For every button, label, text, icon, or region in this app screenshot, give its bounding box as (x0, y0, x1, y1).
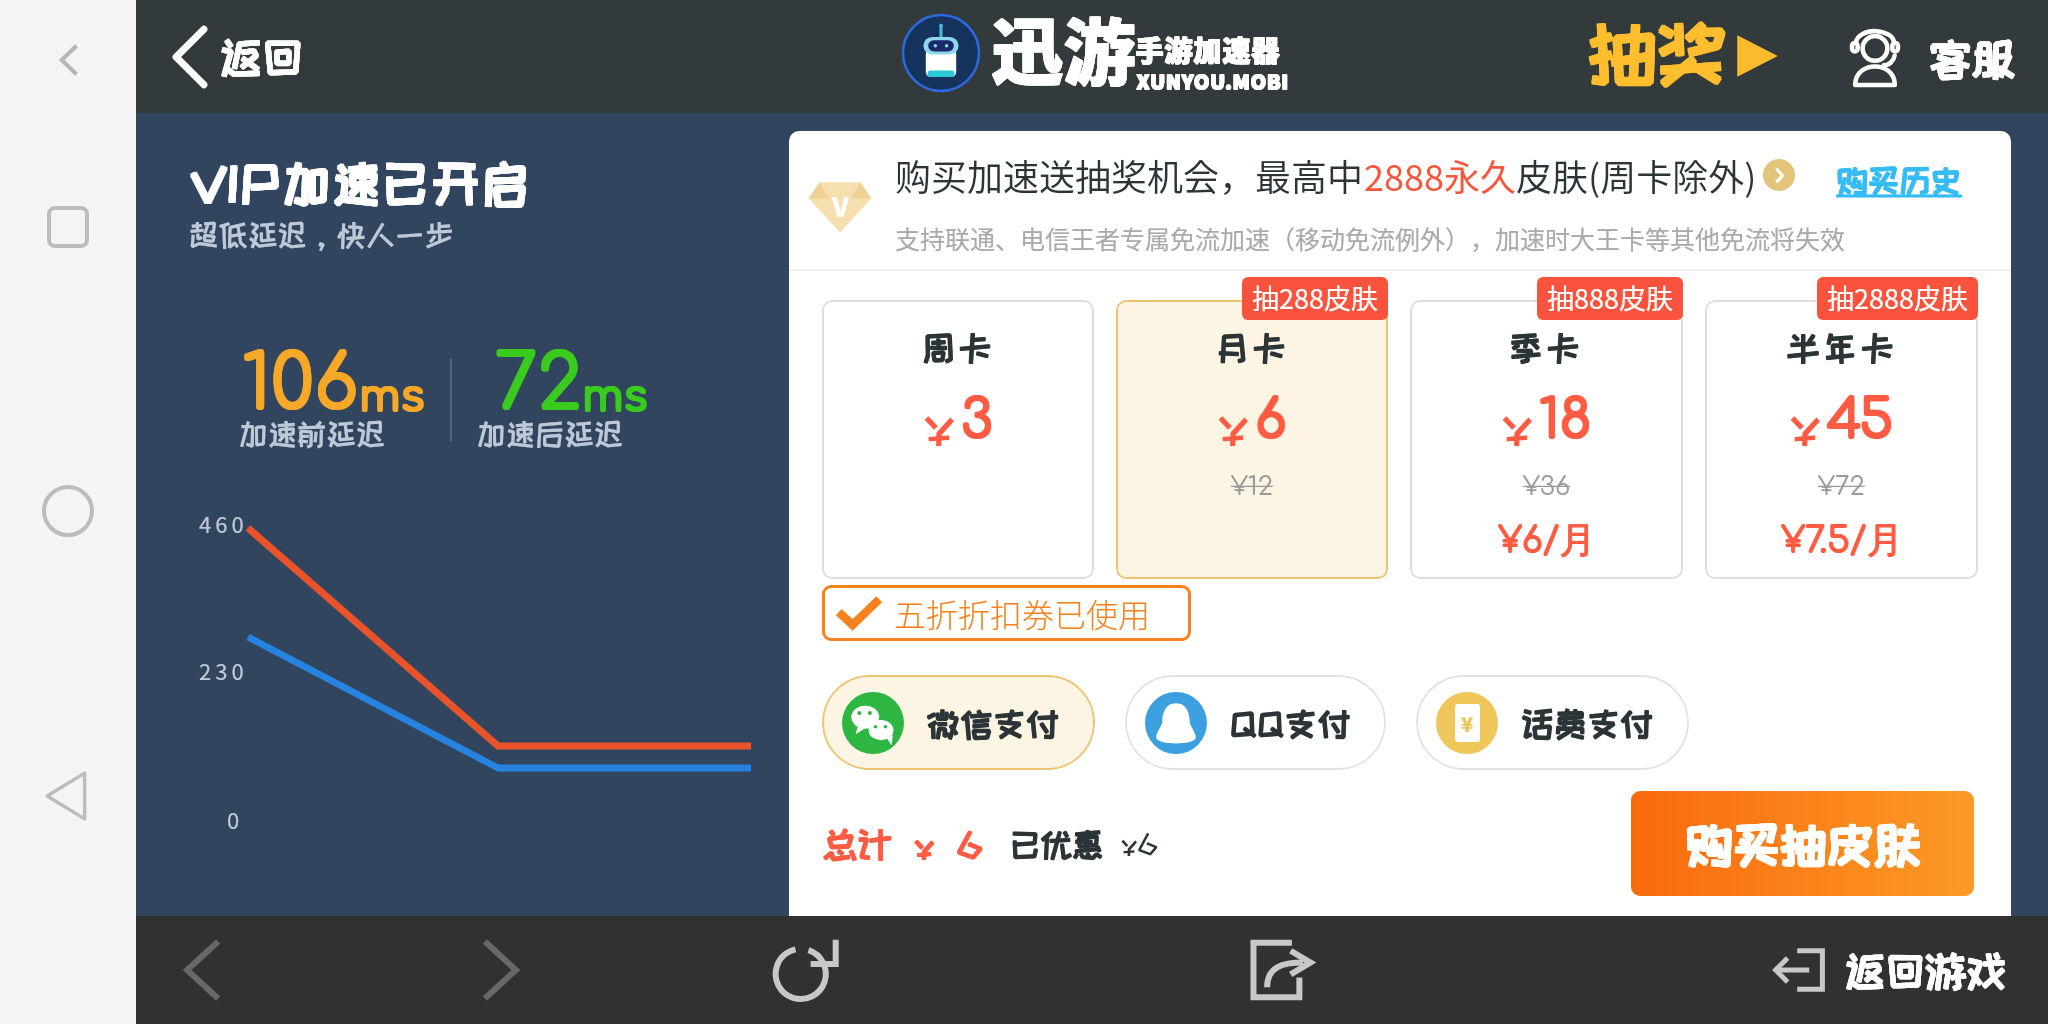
staticText: QQ支付 (1229, 706, 1350, 742)
staticText: ¥72 (1818, 472, 1865, 501)
staticText: 微信支付 (927, 705, 1060, 741)
button[interactable]: 购买历史 (1832, 159, 1966, 201)
staticText: 0 (227, 803, 240, 835)
button[interactable]: Refresh (756, 920, 856, 1020)
staticText: 迅游 (992, 0, 1137, 98)
staticText: 迅游 (991, 0, 1136, 98)
staticText: ms (360, 373, 426, 422)
staticText: 45 (1828, 389, 1895, 449)
staticText: 微信支付 (926, 705, 1059, 741)
button[interactable]: 半年卡 (1705, 300, 1978, 579)
staticText: 手游加速器 (1136, 30, 1282, 71)
button[interactable]: More details (1763, 159, 1795, 191)
button[interactable]: ¥ (1416, 675, 1689, 770)
button[interactable]: 五折折扣券已使用 (822, 585, 1191, 641)
staticText: 客服 (1929, 36, 2016, 83)
staticText: 45 (1826, 389, 1893, 449)
button[interactable]: 周卡 (822, 300, 1094, 579)
staticText: 6 (956, 826, 983, 864)
staticText: 迅游 (991, 0, 1136, 99)
staticText: 6 (956, 825, 983, 863)
staticText: 返回 (220, 35, 305, 81)
staticText: 返回游戏 (1845, 948, 2007, 992)
staticText: 购买历史 (1837, 164, 1963, 198)
staticText: 季卡 (1509, 329, 1584, 365)
staticText: 周卡 (922, 329, 997, 365)
button[interactable]: Share (1232, 920, 1332, 1020)
staticText: 周卡 (921, 330, 996, 366)
staticText: 手游加速器 (1135, 30, 1281, 71)
staticText: 抽2888皮肤 (1827, 278, 1968, 317)
staticText: 106 (241, 343, 358, 428)
staticText: ¥6/月 (1498, 517, 1596, 562)
staticText: 72 (493, 343, 581, 428)
staticText: ¥ (1461, 709, 1474, 738)
staticText: 返回游戏 (1845, 949, 2007, 993)
staticText: 6 (957, 826, 984, 864)
button[interactable]: 返回 (147, 14, 318, 100)
staticText: 抽888皮肤 (1547, 278, 1673, 317)
staticText: 抽奖 (1586, 14, 1726, 90)
staticText: 72 (493, 341, 581, 426)
staticText: 18 (1538, 389, 1591, 449)
staticText: 总计 (823, 825, 893, 863)
button[interactable]: Back (38, 30, 98, 90)
button[interactable]: 季卡 (1410, 300, 1683, 579)
staticText: 月卡 (1216, 329, 1291, 365)
staticText: 总计 (823, 826, 893, 864)
staticText: 18 (1540, 391, 1593, 451)
staticText: ms (581, 373, 647, 422)
button[interactable]: Back (152, 920, 252, 1020)
button[interactable]: 返回游戏 (1766, 934, 2012, 1006)
staticText: ¥ (914, 826, 934, 862)
staticText: ms (358, 373, 424, 422)
button[interactable]: Home (38, 481, 98, 541)
staticText: 3 (962, 389, 994, 449)
staticText: 6 (1256, 391, 1288, 451)
staticText: 季卡 (1510, 330, 1585, 366)
staticText: ms (583, 371, 649, 420)
staticText: QQ支付 (1230, 706, 1351, 742)
staticText: 返回 (219, 35, 304, 81)
staticText: 18 (1538, 391, 1591, 451)
staticText: 106 (243, 341, 360, 426)
staticText: 购买抽皮肤 (1687, 820, 1922, 871)
staticText: ms (581, 371, 647, 420)
staticText: 购买历史 (1837, 163, 1963, 197)
staticText: XUNYOU.MOBI (1137, 67, 1290, 96)
button[interactable]: 微信支付 (822, 675, 1095, 770)
staticText: 半年卡 (1787, 330, 1899, 366)
staticText: 半年卡 (1786, 330, 1898, 366)
button[interactable]: 客服 (1838, 22, 2021, 96)
staticText: 客服 (1928, 35, 2015, 82)
staticText: 周卡 (922, 330, 997, 366)
staticText: 45 (1828, 391, 1895, 451)
staticText: ms (360, 371, 426, 420)
staticText: ¥7.5/月 (1781, 518, 1903, 563)
button[interactable]: Navigate back (38, 766, 98, 826)
button[interactable]: Recents (38, 197, 98, 257)
staticText: 月卡 (1216, 330, 1291, 366)
staticText: 106 (243, 343, 360, 428)
staticText: 超低延迟，快人一步 (189, 219, 454, 251)
button[interactable]: 月卡 (1116, 300, 1388, 579)
staticText: VIP加速已开启 (192, 158, 533, 210)
staticText: 6 (1254, 389, 1286, 449)
staticText: 2888永久 (1364, 149, 1516, 201)
staticText: V (832, 187, 849, 225)
button[interactable]: Forward (451, 920, 551, 1020)
staticText: 106 (241, 341, 358, 426)
button[interactable]: QQ支付 (1125, 675, 1386, 770)
staticText: 微信支付 (926, 706, 1059, 742)
staticText: 话费支付 (1520, 706, 1653, 742)
staticText: 抽奖 (1588, 16, 1728, 92)
button[interactable]: 购买抽皮肤 (1631, 791, 1974, 896)
staticText: 3 (962, 391, 994, 451)
staticText: 返回游戏 (1844, 949, 2006, 993)
staticText: 话费支付 (1520, 705, 1653, 741)
button[interactable]: 抽奖 (1580, 8, 1792, 96)
staticText: ¥6/月 (1499, 517, 1597, 562)
staticText: 6 (1254, 391, 1286, 451)
staticText: ¥36 (1523, 472, 1571, 501)
staticText: VIP加速已开启 (190, 156, 531, 208)
